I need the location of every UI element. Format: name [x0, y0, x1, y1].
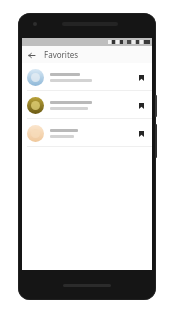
- button[interactable]: Back: [25, 49, 37, 61]
- staticText: Favorites: [44, 49, 79, 60]
- other: Power: [155, 95, 157, 117]
- button[interactable]: Bookmark: [136, 128, 147, 139]
- button[interactable]: Bookmark: [136, 72, 147, 83]
- other: Volume: [155, 124, 157, 158]
- button[interactable]: Bookmark: [22, 119, 152, 147]
- button[interactable]: Bookmark: [22, 63, 152, 91]
- button[interactable]: Bookmark: [22, 91, 152, 119]
- button[interactable]: Bookmark: [136, 100, 147, 111]
